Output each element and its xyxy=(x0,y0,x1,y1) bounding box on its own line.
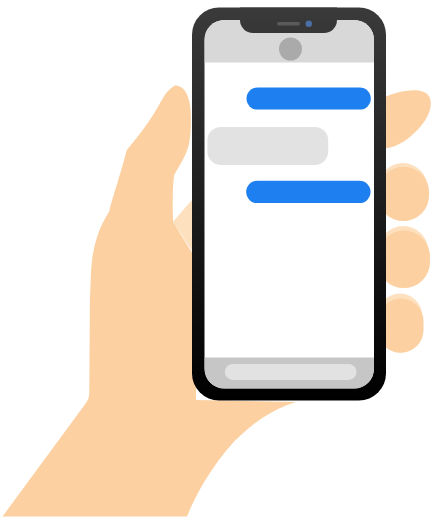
button[interactable]: Hand holding phone illustration xyxy=(0,0,437,521)
